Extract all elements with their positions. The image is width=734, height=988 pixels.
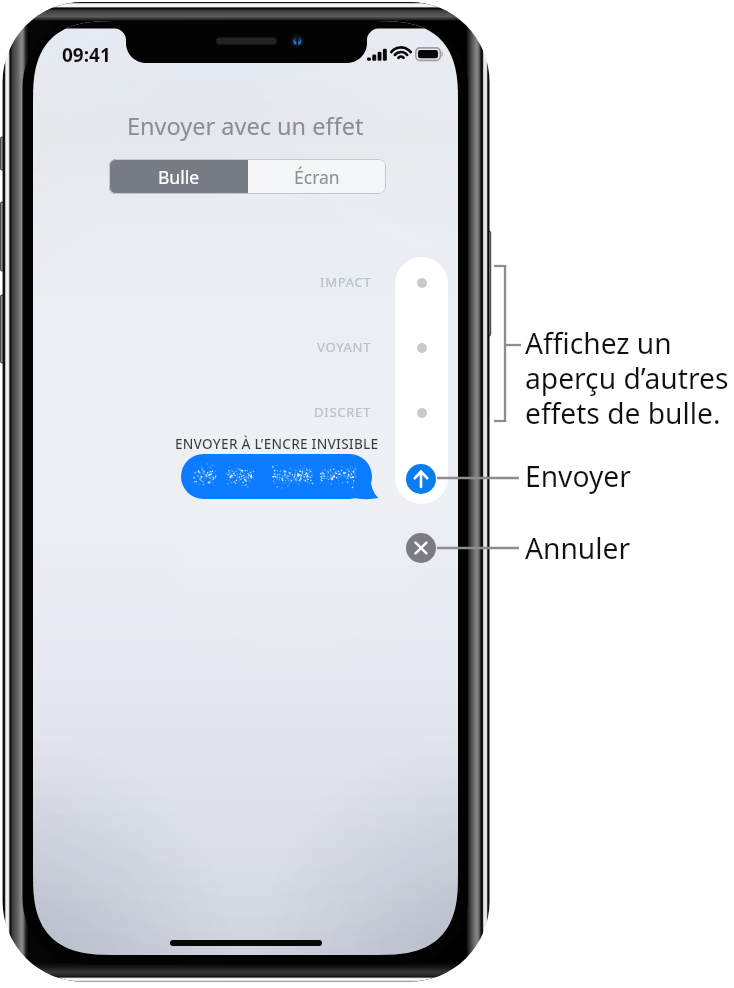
- button[interactable]: Annuler: [406, 533, 436, 563]
- button[interactable]: IMPACT: [238, 270, 372, 294]
- button[interactable]: VOYANT: [238, 335, 372, 359]
- button[interactable]: Écran: [248, 159, 386, 194]
- button[interactable]: Bulle: [109, 159, 248, 194]
- staticText: DISCRET: [314, 403, 372, 421]
- button[interactable]: Envoyer: [406, 464, 436, 494]
- staticText: Bulle: [158, 165, 200, 189]
- staticText: Envoyer avec un effet: [127, 110, 364, 142]
- staticText: IMPACT: [320, 273, 372, 291]
- button[interactable]: DISCRET: [238, 400, 372, 424]
- staticText: Affichez un aperçu d’autres effets de bu…: [525, 324, 729, 433]
- staticText: Annuler: [525, 529, 631, 567]
- staticText: 09:41: [62, 42, 111, 68]
- staticText: Envoyer: [525, 457, 631, 495]
- staticText: ENVOYER À L’ENCRE INVISIBLE: [175, 434, 379, 453]
- staticText: VOYANT: [317, 338, 372, 356]
- staticText: Écran: [294, 165, 340, 189]
